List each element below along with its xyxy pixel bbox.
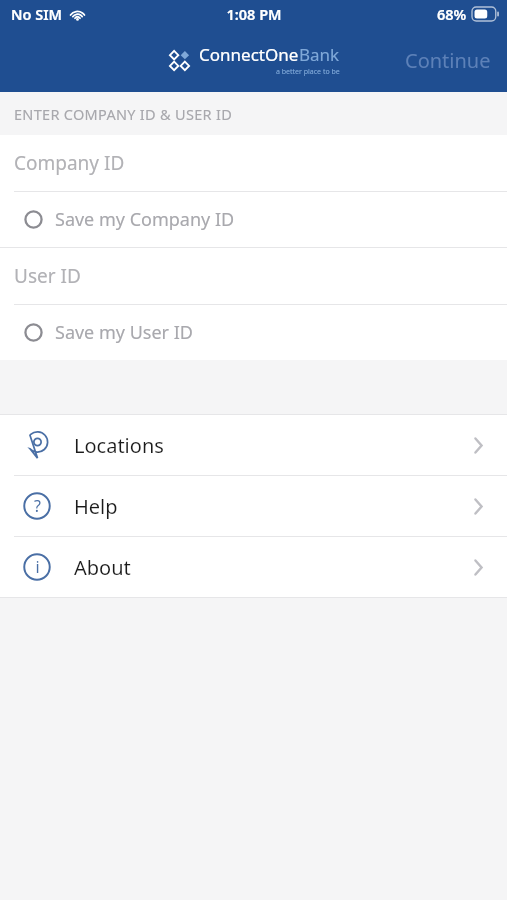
button[interactable]: Save my Company ID [0, 192, 507, 247]
staticText: Bank [299, 43, 340, 66]
staticText: a better place to be [276, 67, 340, 77]
button[interactable]: Company ID [0, 135, 507, 191]
staticText: Save my Company ID [55, 207, 235, 232]
button[interactable]: User ID [0, 248, 507, 304]
staticText: Locations [74, 432, 164, 459]
staticText: ? [34, 495, 41, 517]
staticText: ENTER COMPANY ID & USER ID [14, 104, 233, 124]
button[interactable]: Save my User ID [0, 305, 507, 360]
other: Open [467, 495, 489, 517]
staticText: 1:08 PM [226, 4, 282, 24]
button[interactable]: ? [0, 476, 507, 536]
button[interactable]: Continue [389, 39, 507, 82]
staticText: Save my User ID [55, 320, 193, 345]
button[interactable]: i [0, 537, 507, 597]
other: Open [467, 556, 489, 578]
staticText: About [74, 554, 131, 581]
staticText: ConnectOne [199, 43, 299, 66]
staticText: Continue [405, 47, 491, 74]
staticText: 68% [437, 4, 467, 24]
staticText: User ID [14, 263, 81, 289]
other: Open [467, 434, 489, 456]
staticText: Company ID [14, 150, 125, 176]
staticText: No SIM [11, 4, 63, 24]
staticText: Help [74, 493, 118, 520]
staticText: i [35, 556, 40, 578]
button[interactable]: Locations [0, 415, 507, 475]
